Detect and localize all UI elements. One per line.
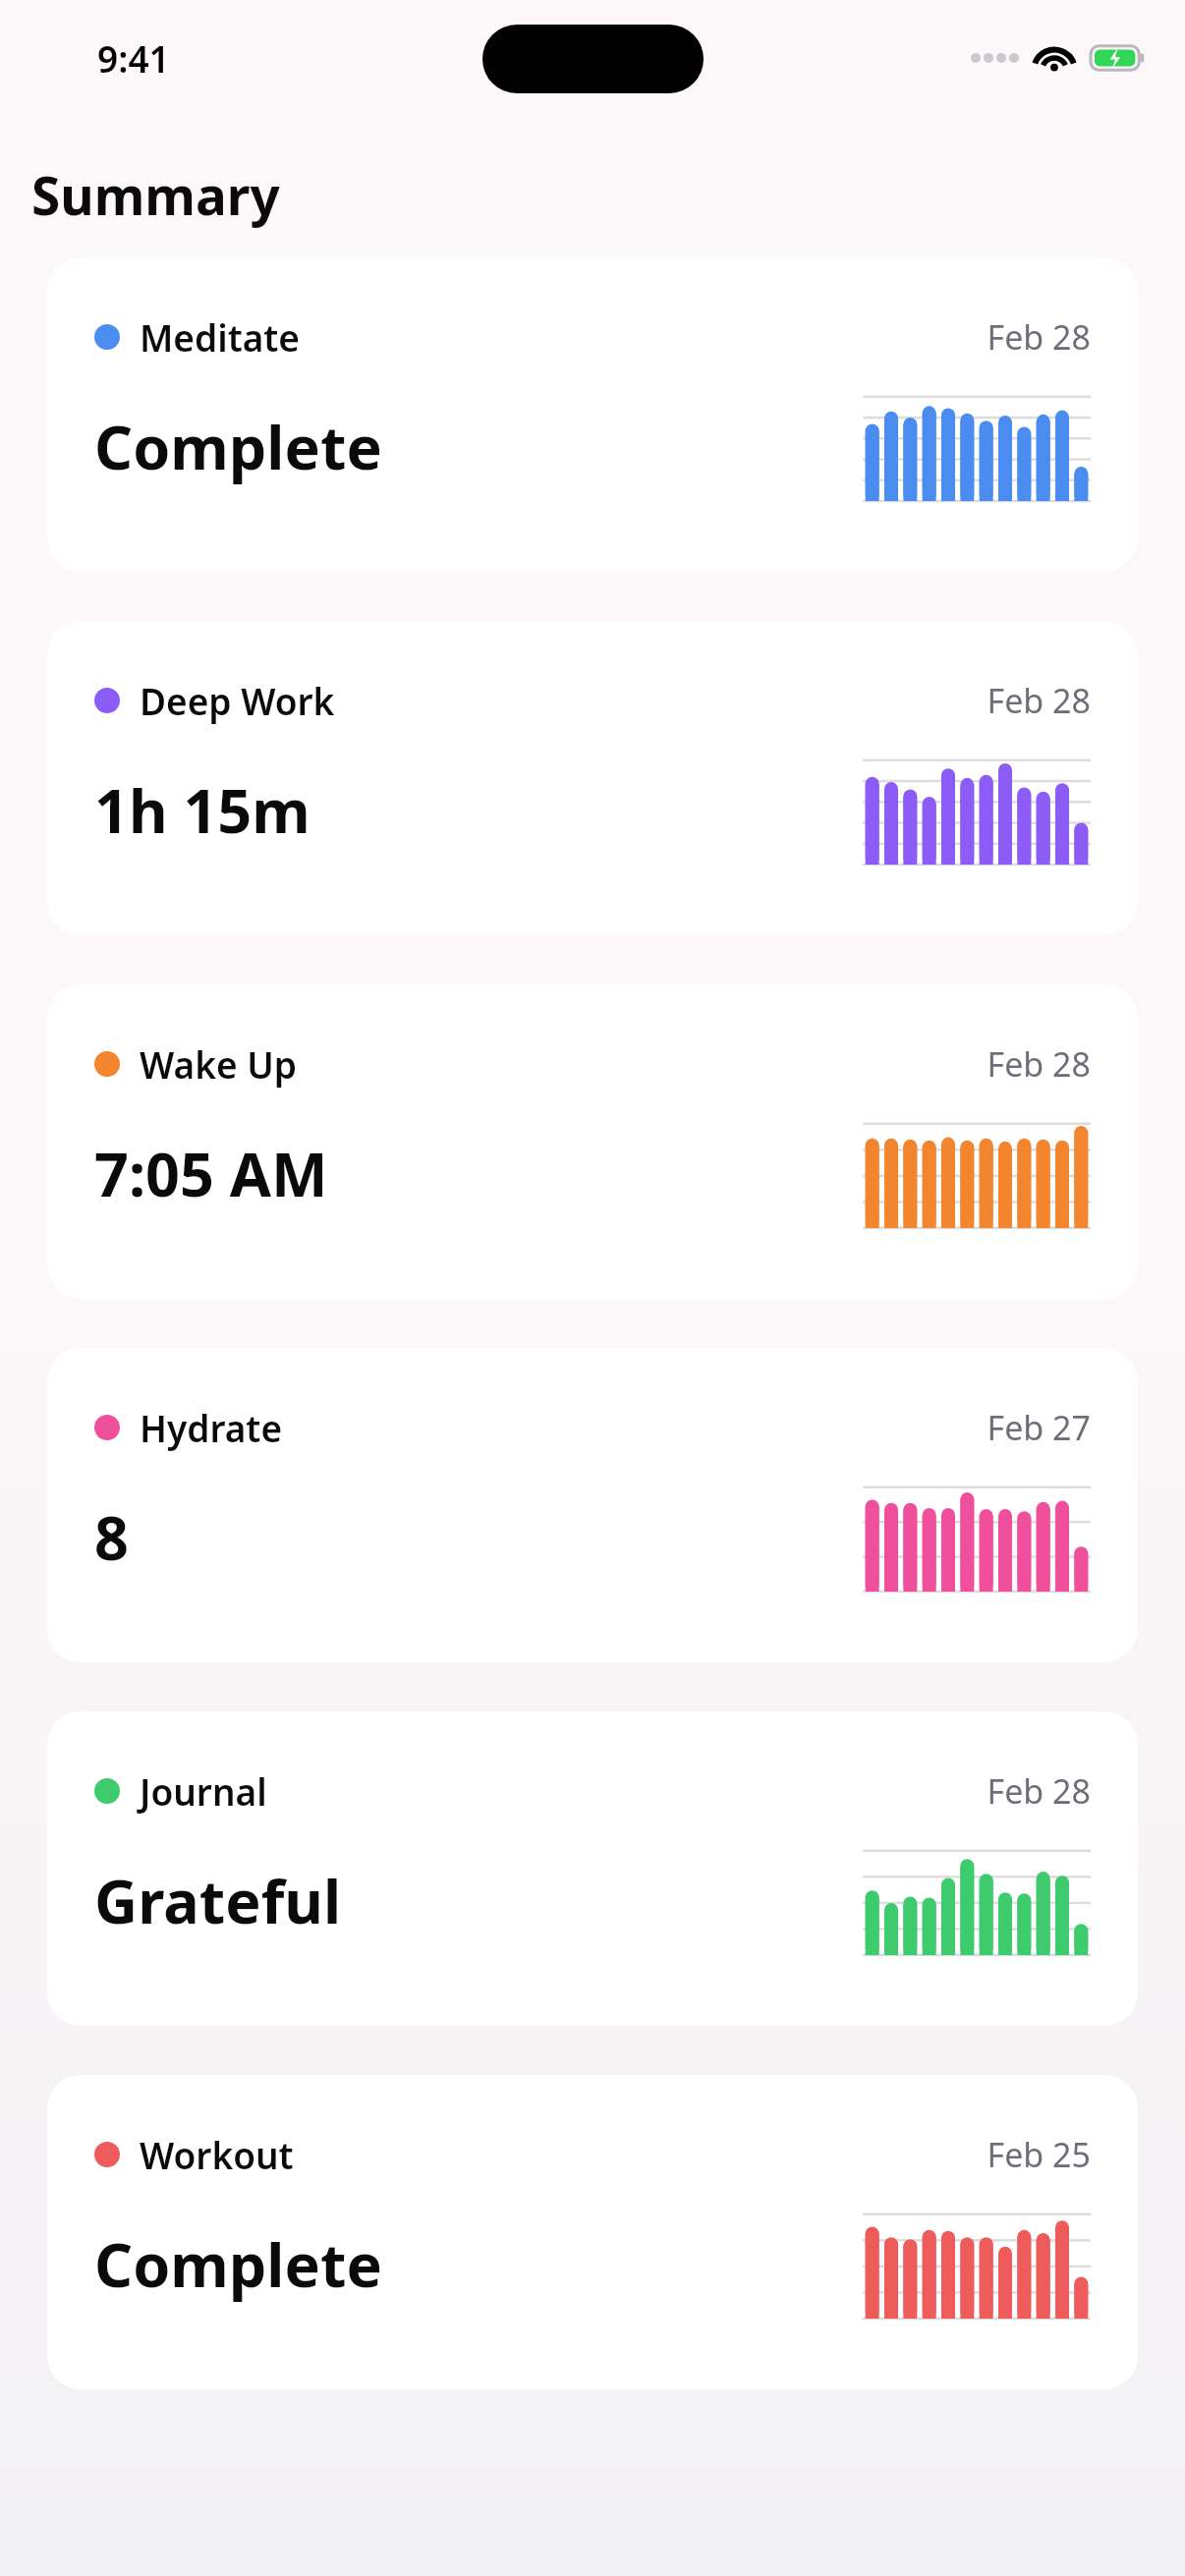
staticText: 9:41	[97, 33, 170, 83]
staticText: Feb 25	[987, 2132, 1091, 2177]
staticText: Wake Up	[140, 1039, 297, 1089]
button[interactable]: Wake Up	[47, 984, 1138, 1299]
staticText: Feb 28	[987, 1768, 1091, 1814]
staticText: Feb 28	[987, 1041, 1091, 1087]
staticText: 8	[94, 1496, 129, 1578]
staticText: Feb 27	[987, 1405, 1091, 1450]
staticText: Grateful	[94, 1860, 342, 1941]
staticText: Journal	[140, 1766, 267, 1816]
staticText: Hydrate	[140, 1403, 283, 1452]
button[interactable]: Meditate	[47, 257, 1138, 572]
button[interactable]: Workout	[47, 2075, 1138, 2389]
staticText: Complete	[94, 406, 382, 487]
staticText: Feb 28	[987, 314, 1091, 360]
staticText: Workout	[140, 2130, 294, 2179]
staticText: Meditate	[140, 312, 300, 362]
staticText: Feb 28	[987, 678, 1091, 723]
staticText: 1h 15m	[94, 769, 310, 851]
staticText: Deep Work	[140, 676, 335, 725]
button[interactable]: Hydrate	[47, 1348, 1138, 1662]
button[interactable]: Journal	[47, 1711, 1138, 2026]
staticText: Complete	[94, 2223, 382, 2305]
staticText: 7:05 AM	[94, 1133, 328, 1214]
staticText: Summary	[31, 159, 280, 230]
button[interactable]: Deep Work	[47, 621, 1138, 935]
